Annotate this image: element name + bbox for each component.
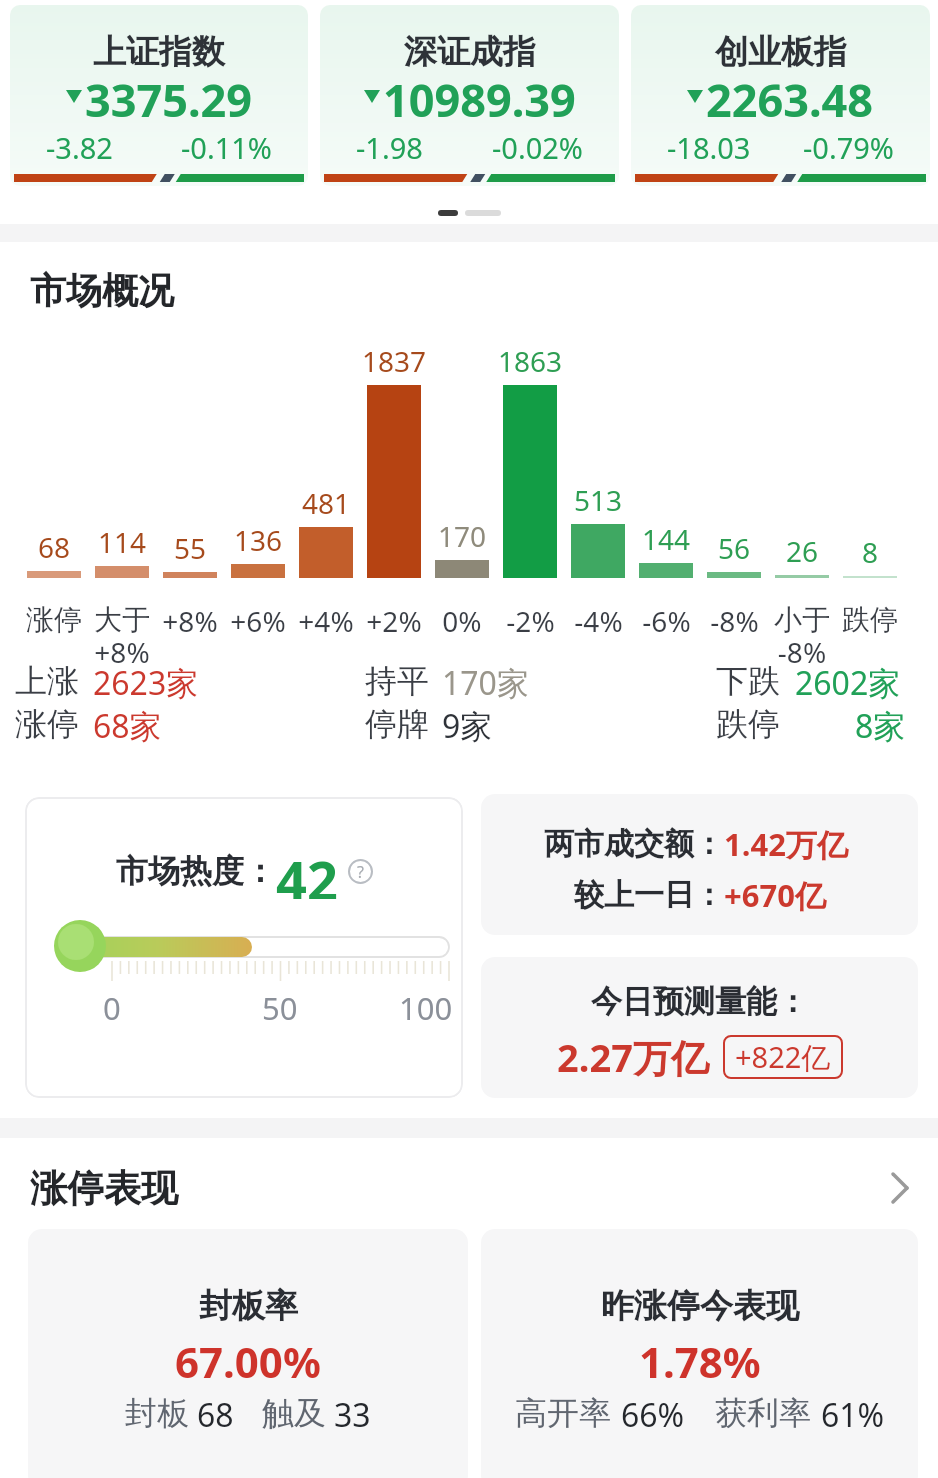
staticText: 两市成交额： <box>544 825 724 863</box>
staticText: 513 <box>574 481 623 519</box>
staticText: 66% <box>621 1393 685 1437</box>
staticText: 今日预测量能： <box>591 982 808 1021</box>
staticText: ? <box>357 861 364 883</box>
staticText: 获利率 <box>715 1393 811 1433</box>
staticText: 1837 <box>362 342 427 380</box>
button[interactable]: 深证成指 <box>320 5 619 186</box>
staticText: +822亿 <box>735 1037 831 1077</box>
staticText: 较上一日： <box>574 876 724 914</box>
staticText: 市场概况 <box>30 268 174 313</box>
staticText: 1.78% <box>639 1333 761 1390</box>
staticText: 持平 <box>365 661 429 701</box>
staticText: 1.42万亿 <box>724 823 848 865</box>
staticText: 深证成指 <box>404 31 536 73</box>
staticText: 3375.29 <box>85 69 253 123</box>
staticText: 8家 <box>855 704 906 748</box>
staticText: 67.00% <box>175 1333 321 1390</box>
staticText: 涨停表现 <box>30 1165 178 1212</box>
staticText: -8% <box>710 602 759 640</box>
staticText: +6% <box>230 602 286 640</box>
staticText: 481 <box>302 484 351 522</box>
staticText: 上证指数 <box>93 31 225 73</box>
staticText: +4% <box>298 602 354 640</box>
button[interactable]: 涨停表现 <box>30 1160 910 1216</box>
staticText: 68家 <box>93 704 162 748</box>
staticText: -18.03 <box>667 128 751 167</box>
staticText: 170 <box>438 517 487 555</box>
staticText: 114 <box>98 523 147 561</box>
staticText: 2602家 <box>795 661 901 705</box>
staticText: 高开率 <box>515 1393 611 1433</box>
staticText: 10989.39 <box>383 69 576 123</box>
staticText: 停牌 <box>365 704 429 744</box>
staticText: -4% <box>574 602 623 640</box>
staticText: 136 <box>234 521 283 559</box>
staticText: 2263.48 <box>706 69 874 123</box>
staticText: 下跌 <box>716 661 780 701</box>
button[interactable]: 今日预测量能： <box>481 957 918 1098</box>
staticText: 2.27万亿 <box>557 1031 709 1083</box>
staticText: 144 <box>642 520 691 558</box>
staticText: 68 <box>197 1393 234 1437</box>
staticText: 封板 <box>125 1393 189 1433</box>
staticText: +2% <box>366 602 422 640</box>
staticText: 56 <box>718 529 751 567</box>
button[interactable]: 封板率 <box>28 1229 468 1478</box>
button[interactable]: 昨涨停今表现 <box>481 1229 918 1478</box>
staticText: 大于 +8% <box>94 602 150 671</box>
staticText: 触及 <box>262 1393 326 1433</box>
staticText: +8% <box>162 602 218 640</box>
staticText: 跌停 <box>716 704 780 744</box>
staticText: 33 <box>334 1393 371 1437</box>
staticText: 创业板指 <box>715 31 847 73</box>
button[interactable]: 创业板指 <box>631 5 930 186</box>
staticText: 9家 <box>442 704 493 748</box>
staticText: 市场热度： <box>116 851 276 891</box>
staticText: 0% <box>442 602 482 640</box>
staticText: 小于 -8% <box>774 602 830 671</box>
staticText: 50 <box>262 987 298 1029</box>
staticText: 26 <box>786 532 819 570</box>
staticText: -0.11% <box>181 128 272 167</box>
staticText: -2% <box>506 602 555 640</box>
staticText: 8 <box>862 533 879 571</box>
staticText: 170家 <box>442 661 529 705</box>
button[interactable]: 市场热度： <box>25 797 463 1098</box>
staticText: 55 <box>174 529 207 567</box>
button[interactable]: 两市成交额： <box>481 794 918 935</box>
staticText: 上涨 <box>15 661 79 701</box>
staticText: 0 <box>103 987 121 1029</box>
staticText: 涨停 <box>26 602 82 637</box>
staticText: +670亿 <box>724 874 826 916</box>
staticText: -1.98 <box>356 128 423 167</box>
staticText: 封板率 <box>199 1285 298 1327</box>
staticText: 涨停 <box>15 704 79 744</box>
staticText: 68 <box>38 528 71 566</box>
staticText: 跌停 <box>842 602 898 637</box>
staticText: -3.82 <box>46 128 113 167</box>
staticText: 42 <box>276 843 338 899</box>
staticText: -0.02% <box>492 128 583 167</box>
staticText: -6% <box>642 602 691 640</box>
staticText: 100 <box>399 987 453 1029</box>
staticText: -0.79% <box>803 128 894 167</box>
staticText: 昨涨停今表现 <box>601 1285 799 1327</box>
staticText: 61% <box>821 1393 885 1437</box>
button[interactable]: 上证指数 <box>10 5 308 186</box>
staticText: 1863 <box>498 342 563 380</box>
staticText: 2623家 <box>93 661 199 705</box>
